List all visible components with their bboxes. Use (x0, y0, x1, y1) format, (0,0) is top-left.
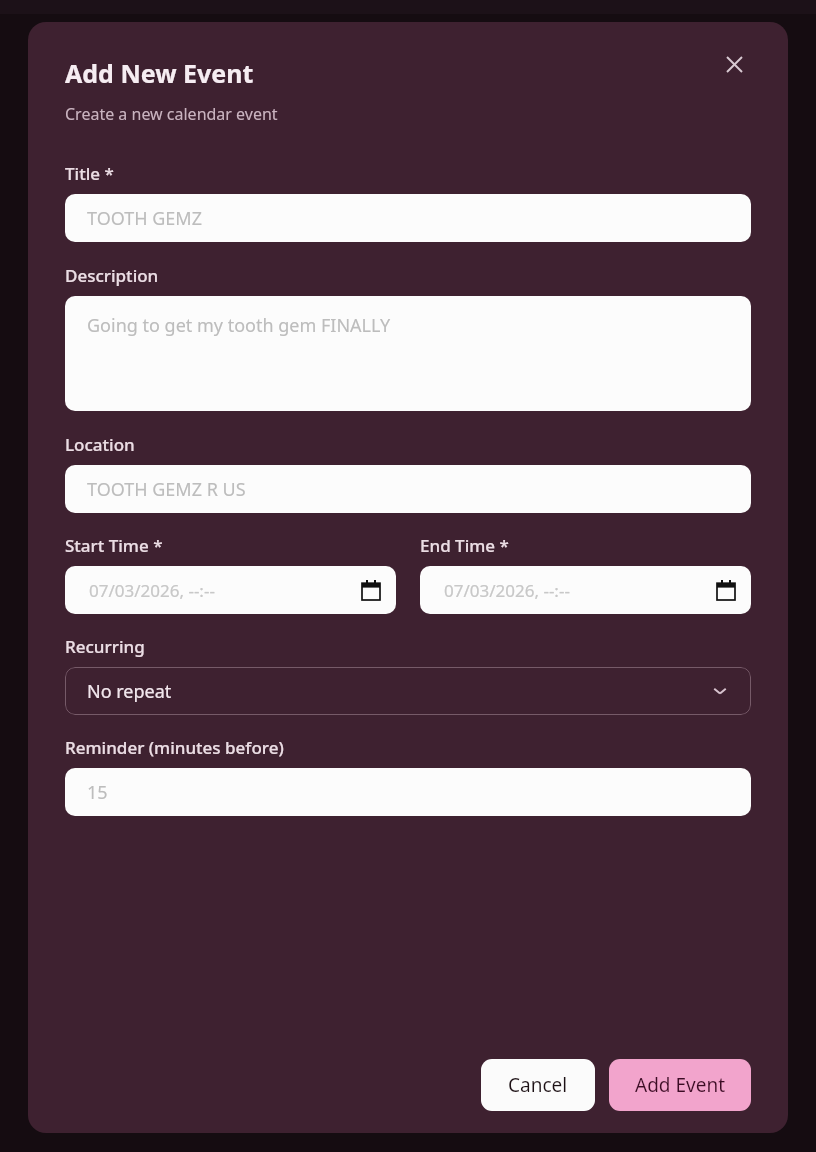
staticText: 07/03/2026, --:-- (444, 579, 570, 602)
staticText: Location (65, 433, 135, 456)
other: Pick date (361, 580, 381, 600)
staticText: Going to get my tooth gem FINALLY (87, 313, 391, 338)
staticText: Cancel (508, 1072, 568, 1098)
other: Pick date (716, 580, 736, 600)
staticText: Add New Event (65, 56, 254, 90)
button[interactable]: Cancel (481, 1059, 595, 1111)
button[interactable]: 07/03/2026, --:-- (65, 566, 396, 614)
button[interactable]: Close (717, 47, 751, 81)
staticText: Add Event (635, 1072, 725, 1098)
staticText: Start Time * (65, 534, 163, 557)
staticText: Reminder (minutes before) (65, 736, 284, 759)
staticText: Description (65, 264, 159, 287)
staticText: 07/03/2026, --:-- (89, 579, 215, 602)
button[interactable]: Going to get my tooth gem FINALLY (65, 296, 751, 411)
staticText: End Time * (420, 534, 509, 557)
button[interactable]: TOOTH GEMZ R US (65, 465, 751, 513)
staticText: Create a new calendar event (65, 103, 278, 125)
button[interactable]: No repeat (65, 667, 751, 715)
staticText: Title * (65, 162, 114, 185)
staticText: TOOTH GEMZ R US (87, 477, 246, 502)
staticText: TOOTH GEMZ (87, 206, 202, 231)
button[interactable]: 07/03/2026, --:-- (420, 566, 751, 614)
button[interactable]: TOOTH GEMZ (65, 194, 751, 242)
staticText: No repeat (87, 679, 172, 704)
button[interactable]: 15 (65, 768, 751, 816)
staticText: 15 (87, 780, 108, 805)
staticText: Recurring (65, 635, 145, 658)
button[interactable]: Add Event (609, 1059, 751, 1111)
